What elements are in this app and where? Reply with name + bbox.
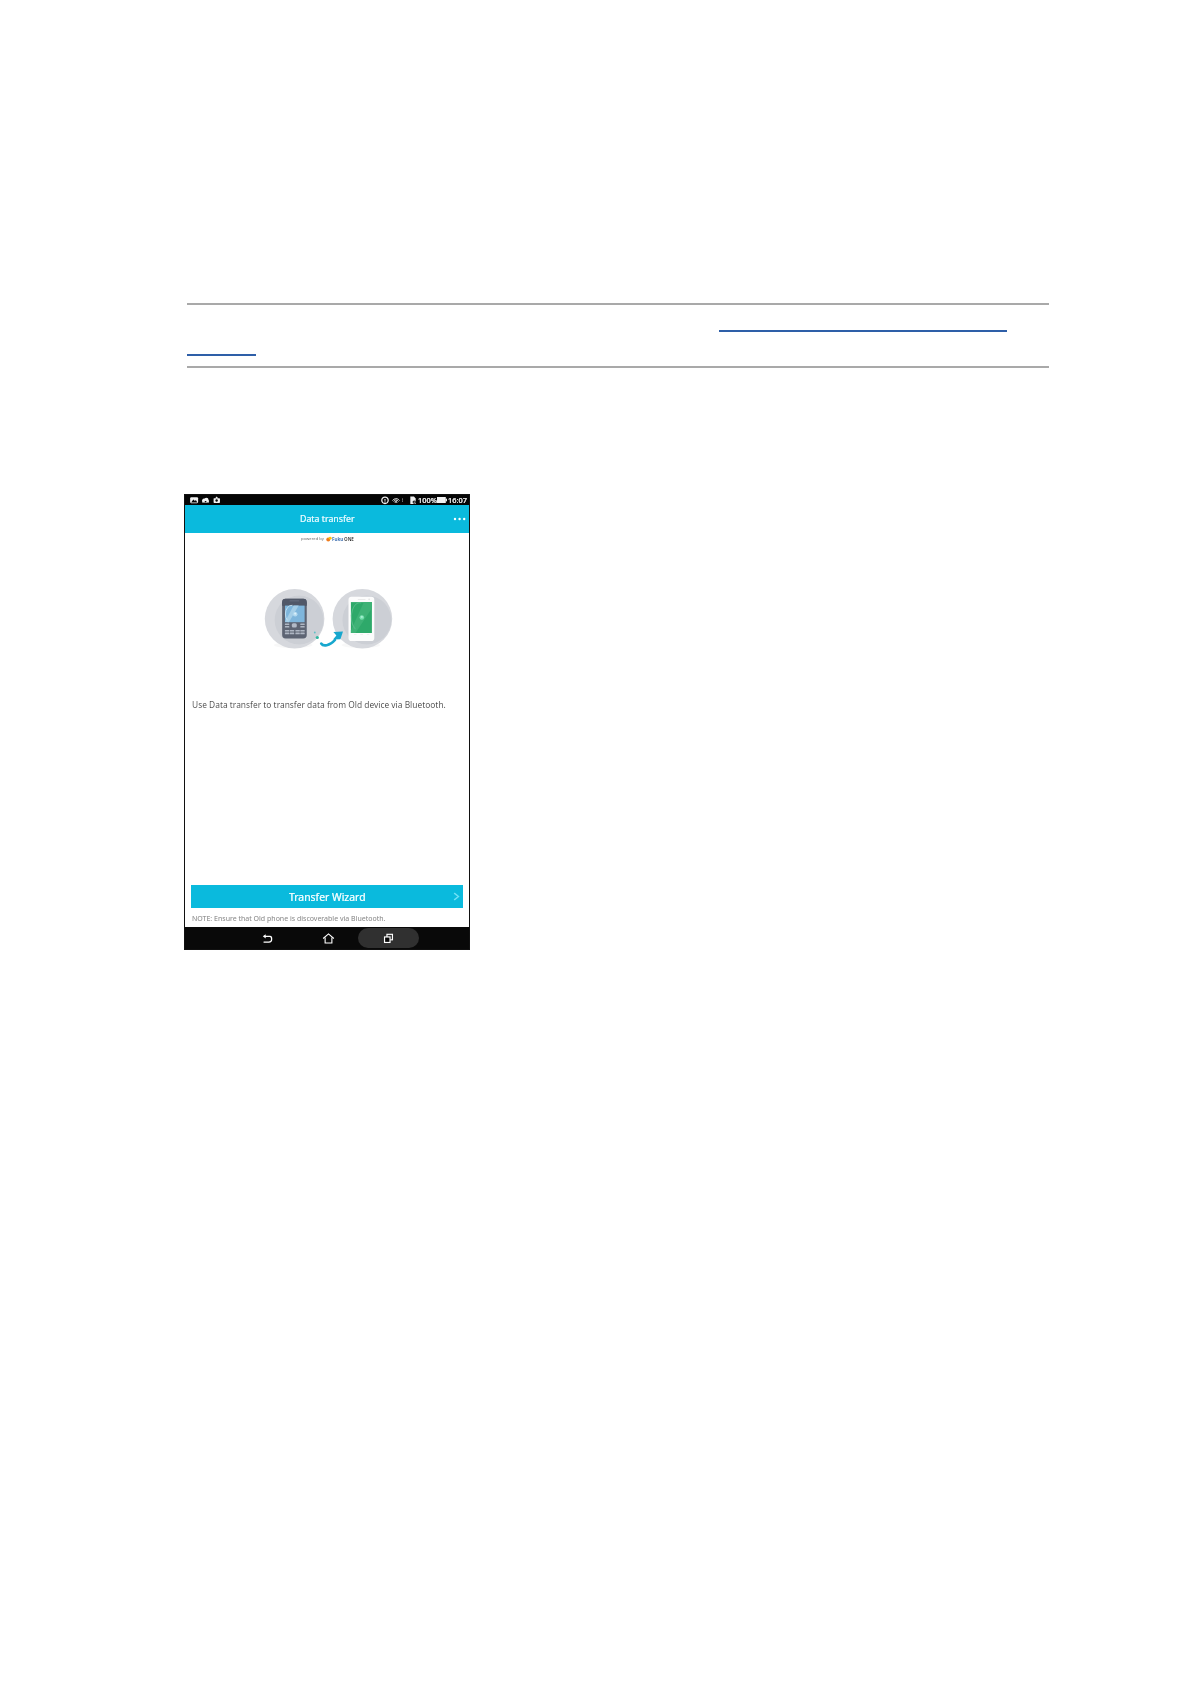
button[interactable]: Back [248, 927, 286, 949]
staticText: Fuku [332, 536, 344, 542]
button[interactable]: Recent apps [358, 928, 419, 948]
staticText: 100% [418, 495, 437, 505]
button[interactable]: Transfer Wizard [191, 885, 463, 908]
staticText: Use Data transfer to transfer data from … [192, 699, 446, 710]
staticText: NOTE: Ensure that Old phone is discovera… [192, 914, 386, 924]
staticText: Data transfer [300, 513, 355, 525]
button[interactable]: Home [309, 927, 347, 949]
staticText: 16:07 [448, 495, 467, 505]
button[interactable]: More options [447, 505, 469, 533]
staticText: powered by [301, 536, 324, 542]
staticText: ONE [344, 536, 354, 542]
staticText: Transfer Wizard [289, 890, 366, 904]
